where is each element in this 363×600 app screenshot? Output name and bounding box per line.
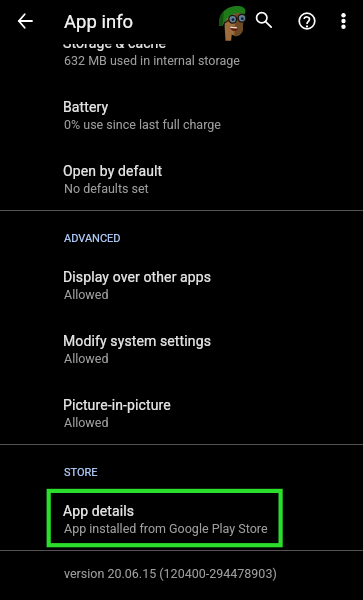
staticText: App installed from Google Play Store bbox=[64, 521, 268, 536]
button[interactable]: Open by default bbox=[0, 149, 363, 213]
staticText: 0% use since last full charge bbox=[64, 117, 221, 132]
button[interactable]: Battery bbox=[0, 85, 363, 149]
button[interactable]: Modify system settings bbox=[0, 319, 363, 383]
staticText: Allowed bbox=[64, 415, 109, 430]
staticText: Allowed bbox=[64, 287, 109, 302]
staticText: Display over other apps bbox=[63, 269, 212, 285]
button[interactable]: Back bbox=[5, 1, 45, 41]
staticText: Modify system settings bbox=[63, 333, 211, 349]
staticText: Battery bbox=[63, 99, 109, 115]
button[interactable]: More options bbox=[326, 2, 361, 40]
button[interactable]: App details bbox=[0, 489, 363, 553]
button[interactable]: Account bbox=[211, 1, 249, 43]
staticText: 632 MB used in internal storage bbox=[64, 53, 240, 68]
button[interactable]: Storage & cache bbox=[0, 21, 363, 85]
staticText: App info bbox=[64, 11, 134, 33]
staticText: STORE bbox=[64, 466, 98, 479]
staticText: App details bbox=[63, 503, 135, 519]
staticText: Open by default bbox=[63, 163, 163, 179]
staticText: ADVANCED bbox=[64, 232, 121, 245]
button[interactable]: Picture-in-picture bbox=[0, 383, 363, 447]
button[interactable]: Help bbox=[288, 2, 325, 40]
staticText: version 20.06.15 (120400-294478903) bbox=[64, 566, 277, 581]
staticText: Storage & cache bbox=[63, 35, 166, 51]
staticText: Picture-in-picture bbox=[63, 397, 171, 413]
staticText: No defaults set bbox=[64, 181, 149, 196]
button[interactable]: Search bbox=[252, 2, 288, 40]
button[interactable]: Display over other apps bbox=[0, 255, 363, 319]
staticText: Allowed bbox=[64, 351, 109, 366]
